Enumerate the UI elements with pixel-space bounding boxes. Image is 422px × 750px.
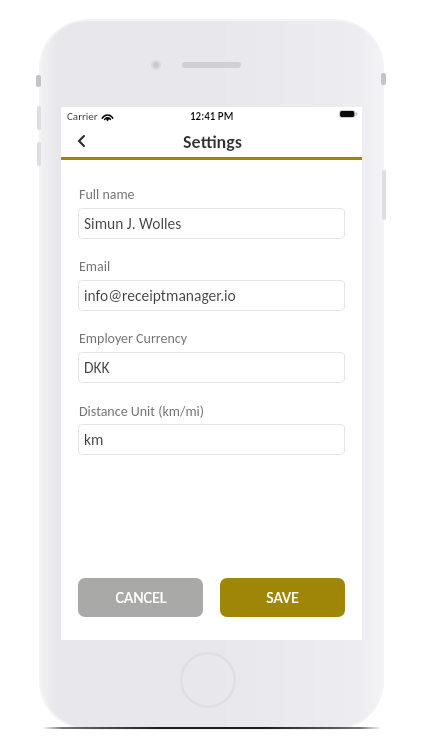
- staticText: Carrier: [67, 110, 98, 123]
- staticText: Distance Unit (km/mi): [79, 403, 205, 420]
- staticText: info@receiptmanager.io: [84, 286, 236, 305]
- button[interactable]: Back: [66, 123, 100, 155]
- staticText: Simun J. Wolles: [84, 214, 182, 233]
- button[interactable]: SAVE: [220, 578, 345, 617]
- staticText: 12:41 PM: [190, 110, 234, 123]
- staticText: DKK: [84, 358, 110, 377]
- button[interactable]: Simun J. Wolles: [78, 208, 345, 239]
- staticText: CANCEL: [115, 588, 167, 608]
- staticText: Email: [79, 258, 111, 275]
- staticText: Employer Currency: [79, 330, 188, 347]
- staticText: km: [84, 430, 104, 449]
- button[interactable]: info@receiptmanager.io: [78, 280, 345, 311]
- staticText: SAVE: [266, 588, 299, 608]
- staticText: Settings: [183, 131, 242, 153]
- button[interactable]: DKK: [78, 352, 345, 383]
- staticText: Full name: [79, 186, 135, 203]
- button[interactable]: km: [78, 424, 345, 455]
- button[interactable]: CANCEL: [78, 578, 203, 617]
